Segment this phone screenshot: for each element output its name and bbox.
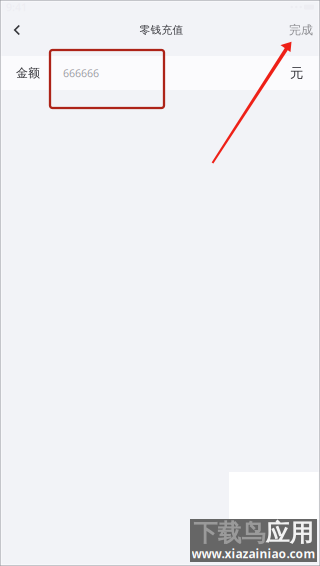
staticText: 9:41: [6, 0, 27, 14]
staticText: www.xiazainiao.com: [191, 545, 315, 561]
staticText: 金额: [16, 66, 40, 80]
staticText: 零钱充值: [139, 23, 183, 36]
staticText: 666666: [63, 66, 99, 80]
staticText: 应用: [265, 518, 313, 548]
staticText: 元: [290, 65, 303, 81]
button[interactable]: Back: [0, 14, 34, 46]
button[interactable]: 完成: [269, 14, 320, 46]
button[interactable]: 金额: [0, 56, 320, 90]
staticText: 完成: [289, 23, 313, 37]
staticText: 下载鸟: [193, 518, 265, 548]
